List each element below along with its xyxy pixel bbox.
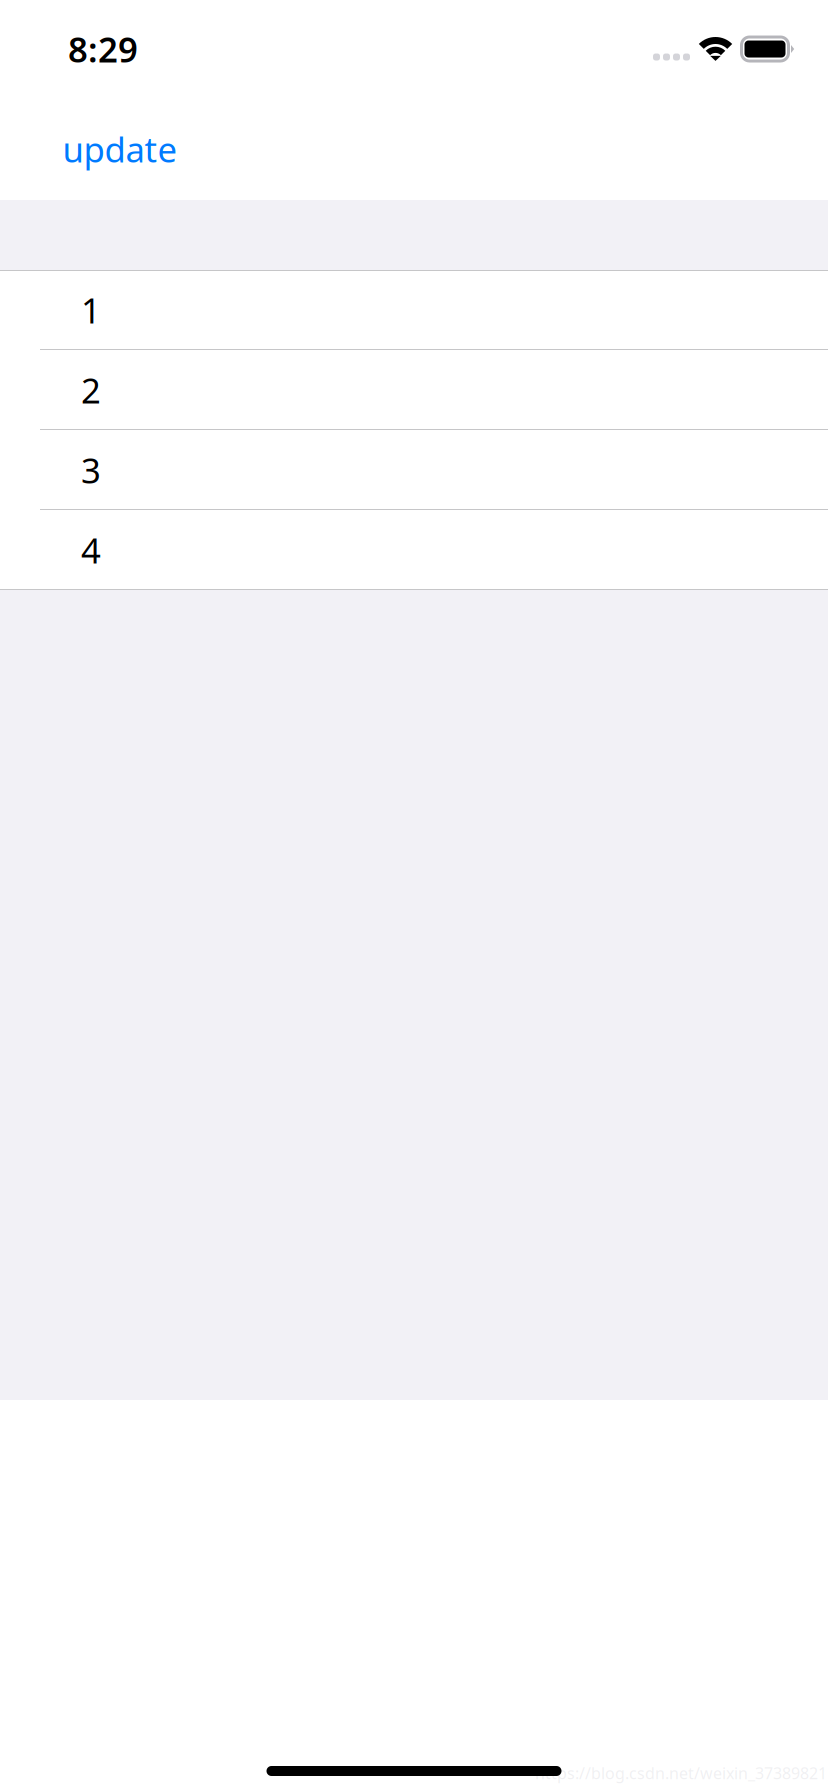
staticText: 4 xyxy=(81,527,101,573)
button[interactable]: update xyxy=(44,110,195,188)
staticText: 8:29 xyxy=(68,26,138,72)
staticText: 1 xyxy=(81,287,101,333)
button[interactable]: 2 xyxy=(0,350,828,430)
staticText: 3 xyxy=(81,447,101,493)
staticText: 2 xyxy=(81,367,101,413)
button[interactable]: 1 xyxy=(0,270,828,350)
staticText: update xyxy=(62,126,177,172)
staticText: https://blog.csdn.net/weixin_37389821 xyxy=(535,1762,827,1784)
button[interactable]: 3 xyxy=(0,430,828,510)
button[interactable]: 4 xyxy=(0,510,828,590)
